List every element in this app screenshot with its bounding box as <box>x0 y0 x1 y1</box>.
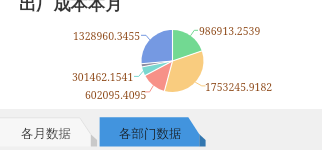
staticText: 986913.2539 <box>199 24 261 38</box>
staticText: 各月数据 <box>21 126 71 142</box>
staticText: 1328960.3455 <box>73 29 141 43</box>
staticText: 301462.1541 <box>72 70 134 84</box>
staticText: 出厂成本本月 <box>19 0 123 15</box>
staticText: 1753245.9182 <box>205 80 273 94</box>
button[interactable]: 各部门数据 <box>100 117 205 146</box>
button[interactable]: 各月数据 <box>0 117 97 146</box>
staticText: 602095.4095 <box>85 88 147 102</box>
staticText: 各部门数据 <box>119 126 182 142</box>
